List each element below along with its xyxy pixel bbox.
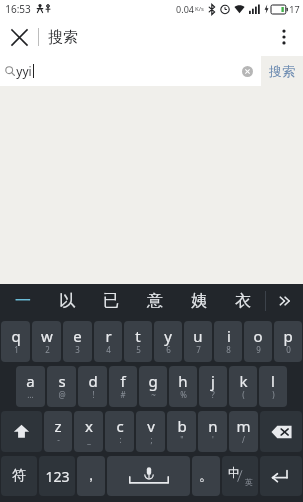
staticText: h — [178, 371, 188, 391]
button[interactable]: h — [169, 366, 197, 407]
staticText: v — [147, 416, 155, 436]
button[interactable]: Space — [107, 456, 190, 496]
staticText: 4 — [106, 344, 111, 355]
button[interactable]: p — [274, 321, 302, 362]
staticText: j — [211, 371, 215, 391]
button[interactable]: w — [32, 321, 61, 362]
staticText: 2 — [45, 344, 50, 355]
button[interactable]: 姨 — [177, 284, 221, 317]
staticText: r — [105, 326, 112, 346]
staticText: 姨 — [191, 291, 207, 311]
button[interactable]: 以 — [45, 284, 89, 317]
staticText: ， — [84, 467, 98, 485]
staticText: o — [253, 326, 263, 346]
button[interactable]: Backspace — [260, 411, 302, 452]
button[interactable]: m — [229, 411, 258, 452]
button[interactable]: 衣 — [221, 284, 265, 317]
button[interactable]: a — [16, 366, 45, 407]
staticText: 衣 — [235, 291, 251, 311]
button[interactable]: o — [244, 321, 272, 362]
button[interactable]: n — [198, 411, 227, 452]
staticText: l — [271, 371, 275, 391]
staticText: yyi — [16, 63, 32, 79]
button[interactable]: 一 — [0, 284, 45, 317]
button[interactable]: j — [199, 366, 227, 407]
button[interactable]: 符 — [1, 456, 37, 496]
button[interactable]: Clear — [237, 61, 257, 81]
button[interactable]: k — [229, 366, 257, 407]
staticText: " — [180, 434, 184, 445]
staticText: w — [41, 326, 53, 346]
button[interactable]: ， — [77, 456, 105, 496]
button[interactable]: x — [74, 411, 103, 452]
button[interactable]: f — [109, 366, 137, 407]
button[interactable]: More options — [265, 18, 303, 56]
button[interactable]: y — [154, 321, 182, 362]
button[interactable]: 意 — [133, 284, 177, 317]
button[interactable]: b — [167, 411, 196, 452]
staticText: 一 — [15, 291, 31, 311]
staticText: % — [180, 389, 187, 400]
staticText: 搜索 — [48, 28, 78, 47]
button[interactable]: c — [105, 411, 134, 452]
staticText: 6 — [166, 344, 171, 355]
button[interactable]: 123 — [39, 456, 75, 496]
button[interactable]: g — [139, 366, 167, 407]
button[interactable]: l — [259, 366, 287, 407]
staticText: 搜索 — [269, 63, 295, 79]
staticText: ; — [150, 434, 153, 445]
staticText: 7 — [196, 344, 201, 355]
button[interactable]: r — [94, 321, 122, 362]
staticText: c — [116, 416, 124, 436]
button[interactable]: z — [44, 411, 72, 452]
button[interactable]: t — [124, 321, 152, 362]
staticText: 1 — [14, 344, 19, 355]
staticText: 中 — [228, 465, 240, 480]
button[interactable]: i — [214, 321, 242, 362]
staticText: g — [148, 371, 158, 391]
button[interactable]: 已 — [89, 284, 133, 317]
staticText: : — [119, 434, 122, 445]
staticText: 意 — [147, 291, 163, 311]
staticText: 16:53 — [5, 2, 31, 16]
staticText: x — [85, 416, 93, 436]
staticText: ... — [27, 389, 34, 400]
button[interactable]: Enter — [260, 456, 302, 496]
staticText: f — [120, 371, 126, 391]
button[interactable]: 搜索 — [261, 56, 303, 86]
button[interactable]: Shift — [1, 411, 42, 452]
staticText: ' — [212, 434, 214, 445]
button[interactable]: yyi — [0, 56, 261, 86]
staticText: ? — [211, 389, 215, 400]
staticText: 17 — [289, 3, 300, 15]
staticText: ! — [92, 389, 95, 400]
staticText: _ — [87, 434, 91, 445]
button[interactable]: 。 — [192, 456, 220, 496]
button[interactable]: q — [1, 321, 30, 362]
staticText: 123 — [45, 467, 70, 486]
staticText: d — [88, 371, 98, 391]
staticText: z — [54, 416, 62, 436]
staticText: 9 — [256, 344, 261, 355]
staticText: s — [58, 371, 66, 391]
staticText: 。 — [199, 467, 213, 485]
staticText: 8 — [226, 344, 231, 355]
staticText: # — [120, 389, 126, 400]
staticText: @ — [58, 389, 66, 400]
staticText: 0 — [286, 344, 291, 355]
button[interactable]: u — [184, 321, 212, 362]
button[interactable]: e — [63, 321, 92, 362]
button[interactable]: d — [78, 366, 107, 407]
staticText: 以 — [59, 291, 75, 311]
staticText: p — [283, 326, 293, 346]
staticText: k — [239, 371, 248, 391]
staticText: t — [135, 326, 141, 346]
button[interactable]: More candidates — [266, 284, 303, 317]
staticText: b — [177, 416, 187, 436]
button[interactable]: v — [136, 411, 165, 452]
button[interactable]: s — [47, 366, 76, 407]
staticText: n — [208, 416, 218, 436]
button[interactable]: Close — [0, 18, 38, 56]
staticText: ( — [242, 389, 245, 400]
button[interactable]: Switch language — [222, 456, 258, 496]
